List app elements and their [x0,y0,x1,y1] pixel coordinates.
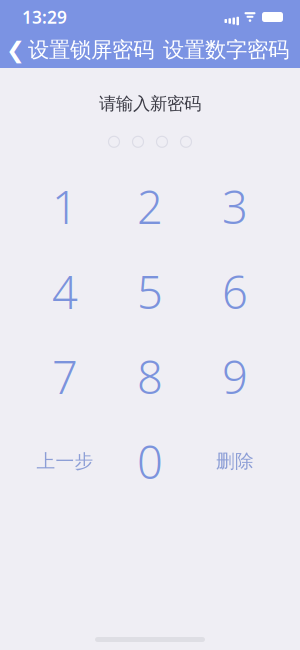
button[interactable]: 7 [27,345,103,407]
staticText: ❮ [6,37,25,63]
staticText: 请输入新密码 [99,93,201,114]
staticText: 5 [137,261,163,321]
staticText: 4 [52,261,78,321]
button[interactable]: 8 [112,345,188,407]
button[interactable]: 3 [197,175,273,237]
button[interactable]: 9 [197,345,273,407]
button[interactable]: 2 [112,175,188,237]
staticText: 3 [222,176,248,236]
staticText: 1 [52,176,78,236]
staticText: 上一步 [36,450,93,473]
staticText: 9 [222,346,248,406]
staticText: 13:29 [22,5,67,28]
button[interactable]: 5 [112,260,188,322]
staticText: 6 [222,261,248,321]
button[interactable]: 0 [112,430,188,492]
staticText: 7 [52,346,78,406]
button[interactable]: 1 [27,175,103,237]
staticText: 删除 [216,450,254,473]
button[interactable]: 上一步 [27,430,103,492]
staticText: 2 [137,176,163,236]
staticText: 8 [137,346,163,406]
staticText: 设置锁屏密码 [28,37,154,63]
button[interactable]: 删除 [197,430,273,492]
staticText: 0 [137,431,163,491]
staticText: 设置数字密码 [163,37,289,63]
button[interactable]: 返回设置锁屏密码 [0,35,158,65]
button[interactable]: 4 [27,260,103,322]
button[interactable]: 6 [197,260,273,322]
